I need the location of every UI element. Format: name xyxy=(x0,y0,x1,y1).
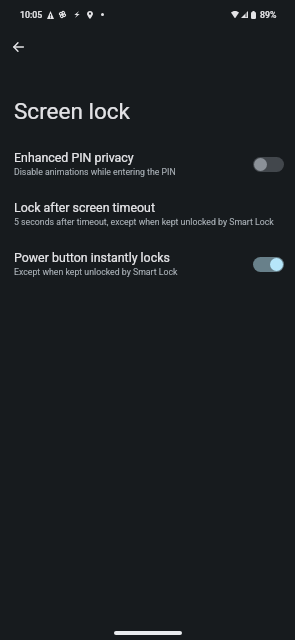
staticText: Screen lock xyxy=(14,98,130,124)
button[interactable]: Lock after screen timeout xyxy=(0,188,295,238)
staticText: Except when kept unlocked by Smart Lock xyxy=(14,267,178,277)
staticText: Enhanced PIN privacy xyxy=(14,150,134,165)
staticText: 5 seconds after timeout, except when kep… xyxy=(14,217,274,227)
button[interactable]: Off xyxy=(253,157,284,172)
button[interactable]: Back xyxy=(6,35,30,59)
button[interactable]: On xyxy=(253,257,284,272)
staticText: Lock after screen timeout xyxy=(14,200,155,215)
staticText: Disable animations while entering the PI… xyxy=(14,167,176,177)
button[interactable]: Power button instantly locks xyxy=(0,238,295,288)
button[interactable]: Enhanced PIN privacy xyxy=(0,138,295,188)
staticText: 89% xyxy=(260,10,277,20)
staticText: Power button instantly locks xyxy=(14,250,170,265)
staticText: 10:05 xyxy=(20,10,43,20)
